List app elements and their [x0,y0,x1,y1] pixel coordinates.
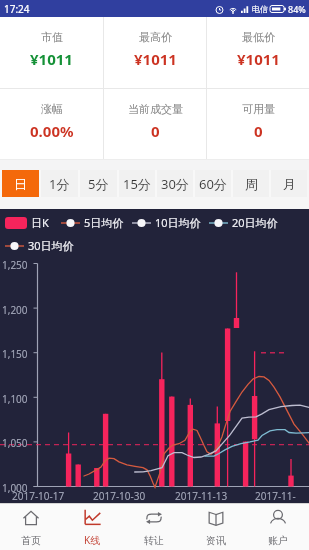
button[interactable]: 转让 [123,504,185,550]
staticText: 2017-11- [255,489,296,503]
staticText: 60分 [199,175,227,193]
button[interactable]: 首页 [0,504,61,550]
staticText: 2017-11-13 [175,489,228,503]
button[interactable]: 60分 [195,170,231,197]
staticText: 日K [31,215,49,230]
staticText: 1,150 [2,347,28,361]
staticText: 17:24 [4,2,30,16]
button[interactable]: 最高价 [104,17,206,88]
staticText: 0.00% [30,121,74,141]
staticText: 1,050 [2,436,28,450]
staticText: 可用量 [242,102,275,116]
staticText: 1,000 [2,481,28,495]
staticText: 账户 [268,534,288,547]
staticText: 市值 [41,30,63,44]
staticText: 最低价 [242,30,275,44]
staticText: 0 [151,121,160,141]
button[interactable]: 20日均价 [209,215,278,230]
button[interactable]: 日K [5,215,49,230]
button[interactable]: 资讯 [185,504,247,550]
staticText: ¥1011 [237,49,280,69]
staticText: 2017-10-17 [12,489,65,503]
button[interactable]: 5分 [80,170,117,197]
staticText: 最高价 [139,30,172,44]
button[interactable]: 30日均价 [5,238,74,253]
staticText: 周 [245,176,258,192]
staticText: 0 [254,121,263,141]
button[interactable]: 账户 [247,504,309,550]
staticText: 1,200 [2,303,28,317]
staticText: 20日均价 [232,215,278,230]
staticText: 10日均价 [155,215,201,230]
staticText: ¥1011 [134,49,177,69]
staticText: 1,100 [2,392,28,406]
staticText: 5日均价 [84,215,124,230]
staticText: ¥1011 [30,49,73,69]
button[interactable]: 周 [233,170,269,197]
button[interactable]: 30分 [157,170,193,197]
button[interactable]: K线 [61,504,123,550]
staticText: 日 [14,176,27,192]
staticText: 1,250 [2,258,28,272]
staticText: 电信 [252,4,268,14]
staticText: 84% [288,3,306,15]
button[interactable]: 10日均价 [132,215,201,230]
button[interactable]: 最低价 [207,17,309,88]
button[interactable]: 可用量 [207,89,309,159]
staticText: 转让 [144,534,164,547]
staticText: K线 [84,533,101,547]
staticText: 1分 [49,175,70,193]
button[interactable]: 5日均价 [61,215,124,230]
button[interactable]: 涨幅 [0,89,103,159]
staticText: 资讯 [206,534,226,547]
staticText: 5分 [88,175,109,193]
staticText: 涨幅 [41,102,63,116]
button[interactable]: 当前成交量 [104,89,206,159]
button[interactable]: 市值 [0,17,103,88]
staticText: 首页 [21,534,41,547]
staticText: 30日均价 [28,238,74,253]
staticText: 15分 [123,175,151,193]
staticText: 30分 [161,175,189,193]
button[interactable]: 1分 [41,170,78,197]
staticText: 月 [283,176,296,192]
staticText: 2017-10-30 [93,489,146,503]
staticText: 当前成交量 [128,102,183,116]
button[interactable]: 日 [2,170,39,197]
button[interactable]: 月 [271,170,307,197]
button[interactable]: 15分 [119,170,155,197]
